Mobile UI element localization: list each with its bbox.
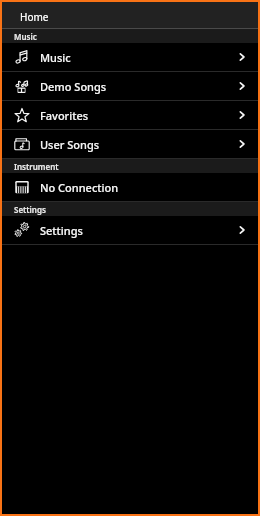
staticText: Settings [14, 204, 46, 215]
staticText: Home [20, 10, 49, 24]
staticText: Favorites [40, 108, 89, 123]
staticText: Settings [40, 223, 83, 238]
staticText: No Connection [40, 180, 119, 195]
staticText: Instrument [14, 161, 59, 172]
button[interactable]: No Connection [2, 173, 258, 201]
button[interactable]: Settings [2, 216, 258, 244]
button[interactable]: User Songs [2, 130, 258, 158]
button[interactable]: Favorites [2, 101, 258, 129]
staticText: Demo Songs [40, 79, 107, 94]
staticText: Music [40, 50, 71, 65]
staticText: User Songs [40, 137, 100, 152]
button[interactable]: Music [2, 43, 258, 71]
staticText: Music [14, 31, 37, 42]
button[interactable]: Demo Songs [2, 72, 258, 100]
